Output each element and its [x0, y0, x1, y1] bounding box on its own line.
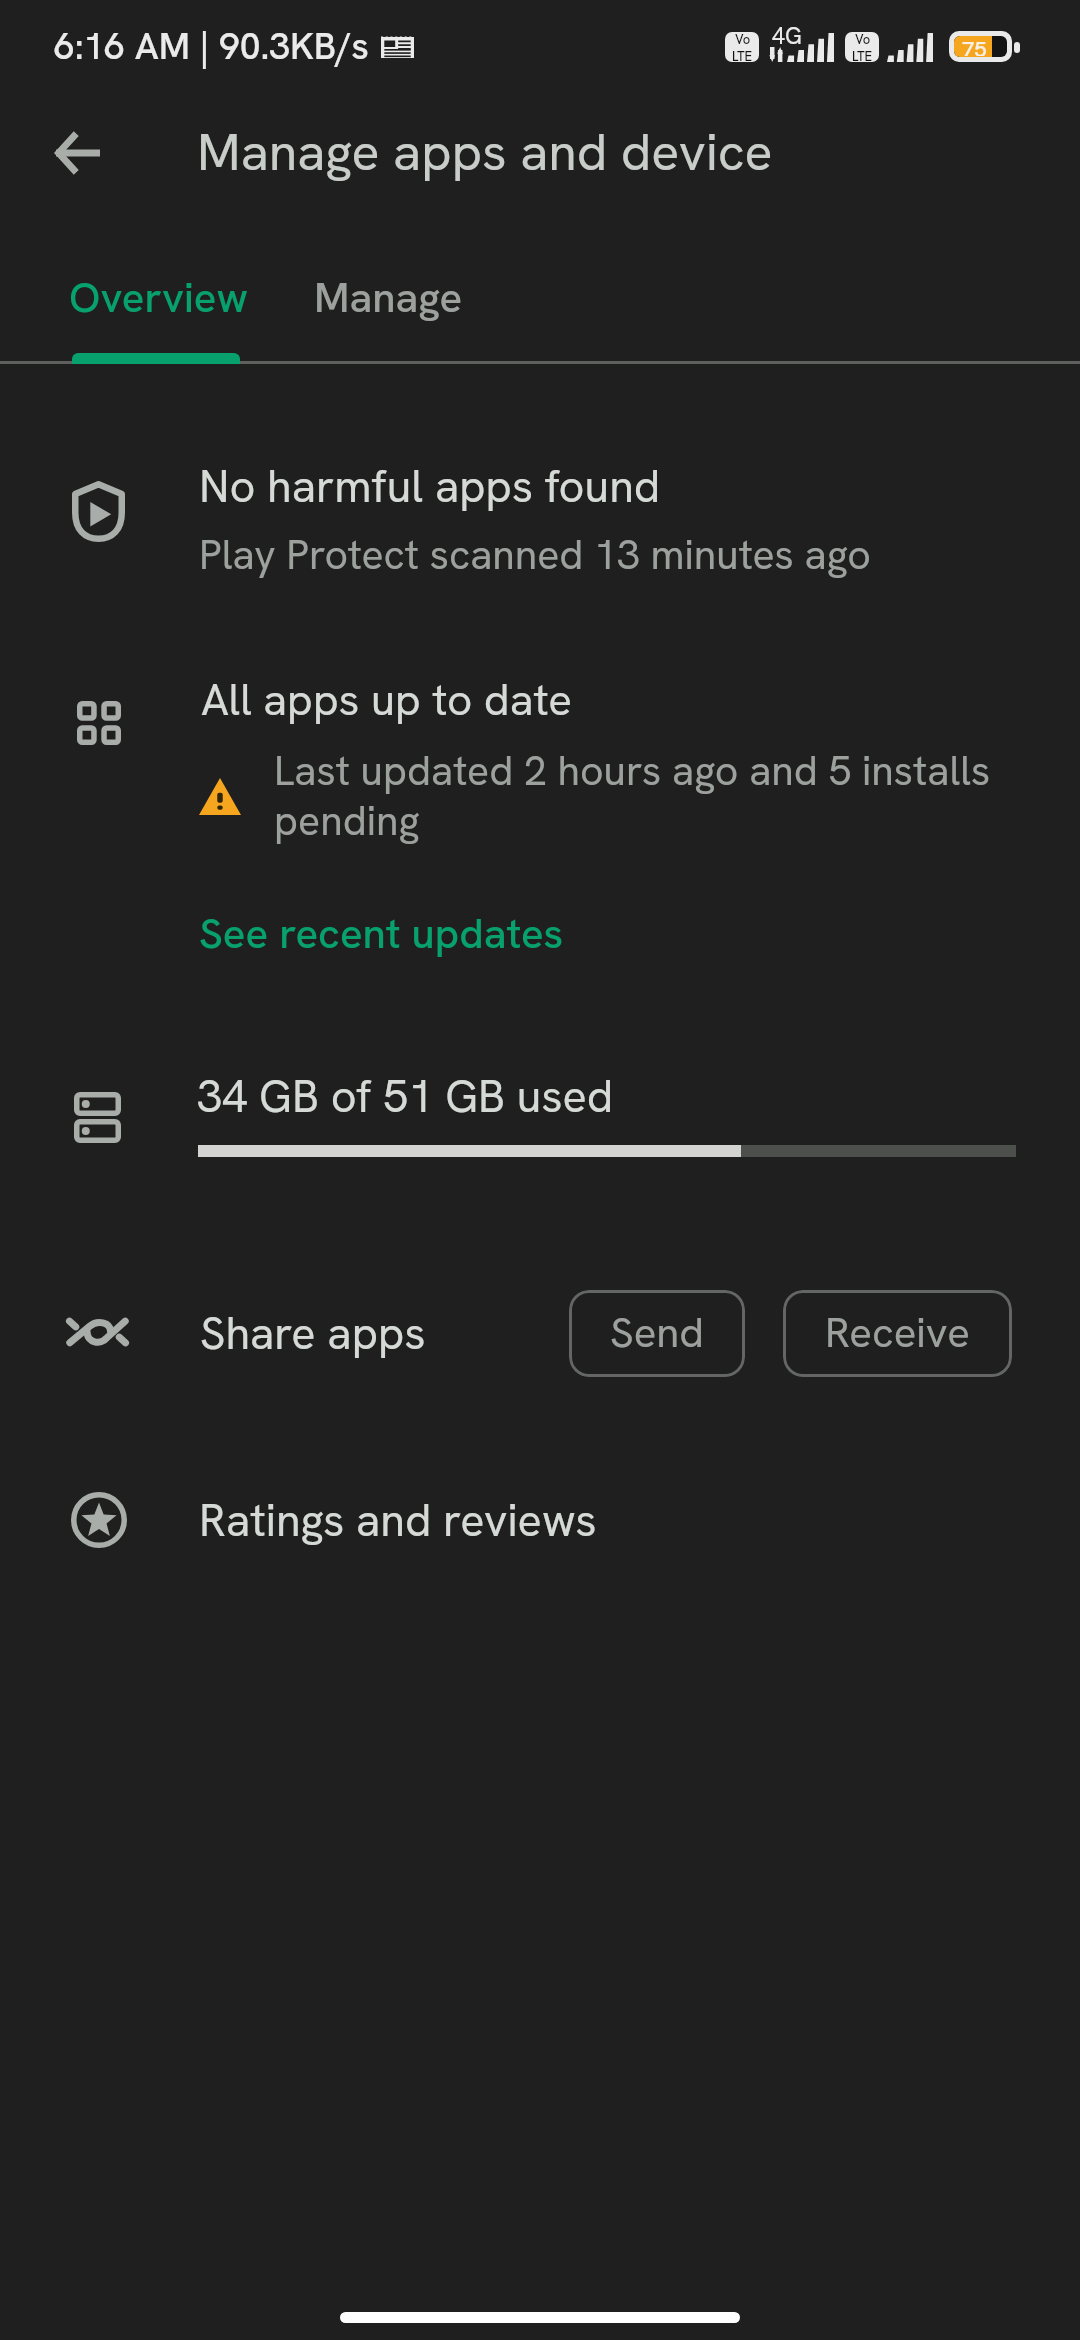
staticText: 6:16 AM | 90.3KB/s — [54, 22, 370, 70]
staticText: Receive — [825, 1305, 970, 1360]
staticText: Share apps — [200, 1304, 426, 1363]
button[interactable]: Manage — [312, 246, 587, 362]
staticText: Play Protect scanned 13 minutes ago — [199, 528, 872, 581]
staticText: LTE — [732, 48, 753, 61]
staticText: Vo — [735, 32, 751, 48]
staticText: See recent updates — [199, 906, 564, 961]
staticText: Manage apps and device — [197, 118, 773, 186]
button[interactable]: No harmful apps found — [0, 440, 1080, 600]
staticText: No harmful apps found — [199, 457, 661, 516]
staticText: Ratings and reviews — [199, 1491, 597, 1550]
staticText: 34 GB of 51 GB used — [197, 1067, 614, 1126]
button[interactable]: Back — [29, 105, 125, 201]
button[interactable]: See recent updates — [199, 906, 564, 961]
staticText: 4G — [772, 21, 802, 51]
button[interactable]: 34 GB of 51 GB used — [0, 1045, 1080, 1185]
button[interactable]: Send — [569, 1290, 745, 1377]
staticText: All apps up to date — [201, 671, 572, 728]
staticText: Last updated 2 hours ago and 5 installs … — [274, 744, 1019, 848]
staticText: Manage — [314, 270, 463, 325]
staticText: Send — [610, 1305, 704, 1360]
staticText: LTE — [852, 48, 873, 61]
button[interactable]: Receive — [783, 1290, 1012, 1377]
button[interactable]: Ratings and reviews — [0, 1470, 1080, 1580]
staticText: 75 — [962, 36, 987, 56]
button[interactable]: Overview — [0, 246, 312, 362]
staticText: Vo — [855, 32, 871, 48]
staticText: Overview — [69, 270, 248, 325]
